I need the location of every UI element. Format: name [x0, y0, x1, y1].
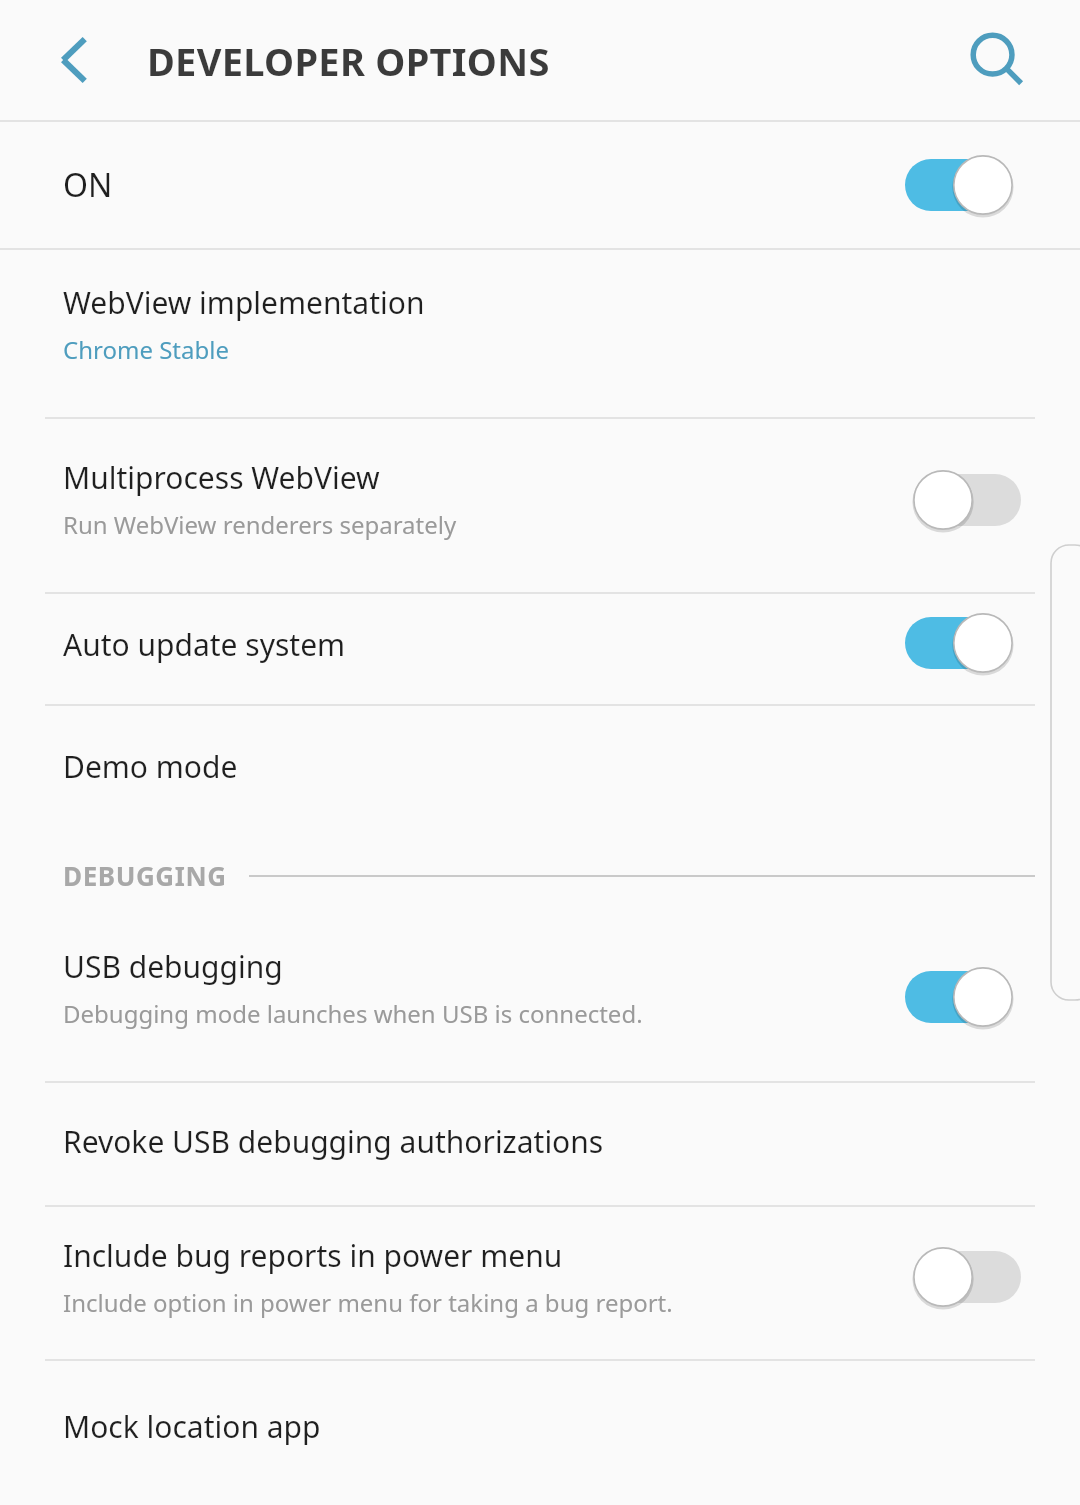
button[interactable]: Demo mode — [0, 706, 1080, 826]
button[interactable]: Search — [958, 22, 1034, 98]
button[interactable]: Include bug reports in power menu — [0, 1207, 1080, 1359]
button[interactable]: USB debugging — [0, 924, 1080, 1081]
staticText: DEVELOPER OPTIONS — [147, 35, 550, 87]
staticText: ON — [63, 163, 113, 207]
button[interactable]: WebView implementation — [0, 250, 1080, 417]
staticText: WebView implementation — [63, 282, 425, 323]
staticText: Run WebView renderers separately — [63, 508, 457, 541]
button[interactable]: Multiprocess WebView — [0, 419, 1080, 592]
button[interactable]: Back — [30, 24, 102, 96]
staticText: Mock location app — [63, 1406, 321, 1447]
staticText: Debugging mode launches when USB is conn… — [63, 997, 643, 1030]
staticText: Multiprocess WebView — [63, 457, 380, 498]
button[interactable]: Auto update system — [0, 594, 1080, 704]
button[interactable]: Revoke USB debugging authorizations — [0, 1083, 1080, 1205]
staticText: Chrome Stable — [63, 333, 229, 366]
staticText: Include option in power menu for taking … — [63, 1286, 673, 1319]
button[interactable]: ON — [0, 122, 1080, 248]
staticText: Revoke USB debugging authorizations — [63, 1121, 604, 1162]
staticText: DEBUGGING — [63, 858, 227, 893]
staticText: Auto update system — [63, 624, 346, 665]
button[interactable]: Mock location app — [0, 1361, 1080, 1481]
staticText: Include bug reports in power menu — [63, 1235, 563, 1276]
staticText: Demo mode — [63, 746, 238, 787]
staticText: USB debugging — [63, 946, 283, 987]
